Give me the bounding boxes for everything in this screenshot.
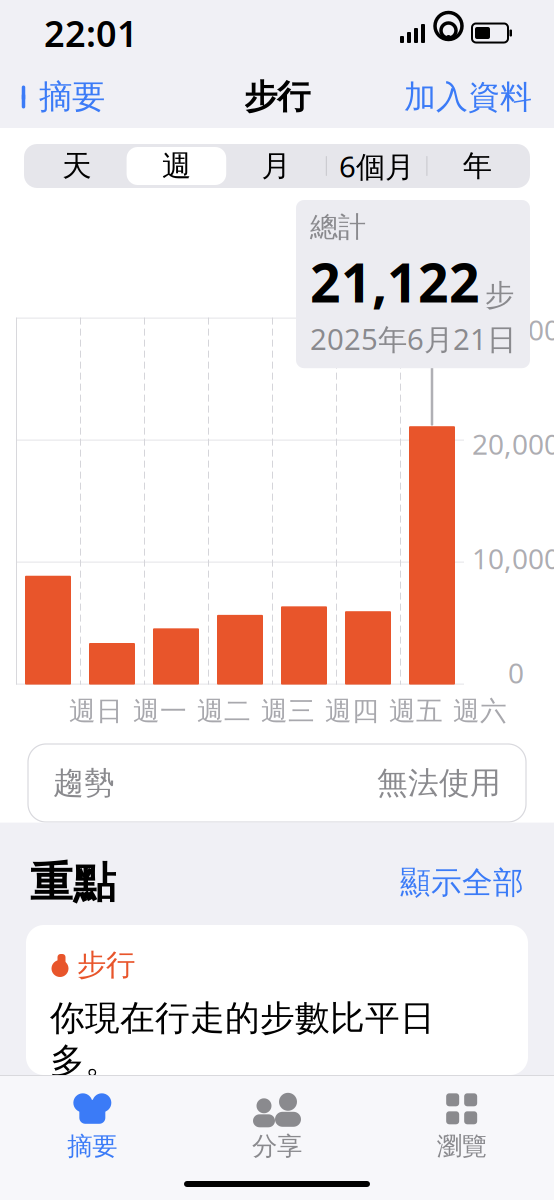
staticText: 顯示全部 [400,864,524,902]
staticText: 6個月 [339,146,414,185]
staticText: 無法使用 [377,764,501,802]
staticText: 年 [463,148,492,184]
staticText: 週五 [389,695,443,727]
button[interactable]: 摘要 [0,68,105,125]
staticText: 月 [261,148,290,184]
staticText: 週 [162,148,191,184]
staticText: 加入資料 [404,77,532,117]
staticText: 週一 [133,695,187,727]
staticText: 週二 [197,695,251,727]
staticText: 0 [508,654,524,691]
staticText: 21,122 [310,246,480,317]
staticText: 週六 [453,695,507,727]
staticText: 總計 [310,210,366,244]
button[interactable]: 月 [226,147,326,185]
button[interactable]: 趨勢 [0,730,554,850]
staticText: 平均 [229,1117,285,1152]
button[interactable]: 瀏覽 [369,1088,554,1166]
staticText: 步 [485,277,514,313]
staticText: 分享 [252,1131,302,1162]
staticText: 摘要 [39,76,105,117]
button[interactable]: 加入資料 [404,69,554,125]
staticText: 摘要 [67,1131,117,1162]
staticText: 天 [62,148,91,184]
staticText: 週日 [69,695,123,727]
staticText: 30,000 [472,311,554,348]
button[interactable]: 天 [27,147,127,185]
staticText: 重點 [30,857,116,909]
staticText: 今天 [69,1117,125,1152]
button[interactable]: 週 [127,147,226,185]
staticText: 趨勢 [53,764,115,802]
button[interactable]: 年 [427,147,527,185]
staticText: 步行 [244,76,310,117]
staticText: 你現在行走的步數比平日多。 [50,997,435,1082]
staticText: 週四 [325,695,379,727]
button[interactable]: 分享 [185,1088,369,1166]
staticText: 22:01 [44,9,138,57]
button[interactable]: 6個月 [327,147,426,185]
staticText: 週三 [261,695,315,727]
staticText: 10,000 [472,540,554,577]
staticText: 步行 [77,947,135,983]
staticText: 瀏覽 [437,1131,487,1162]
button[interactable]: 摘要 [0,1088,185,1166]
staticText: 2025年6月21日 [310,319,516,358]
staticText: 20,000 [472,425,554,463]
button[interactable]: 步行 [0,925,554,1075]
button[interactable]: 顯示全部 [400,858,524,908]
